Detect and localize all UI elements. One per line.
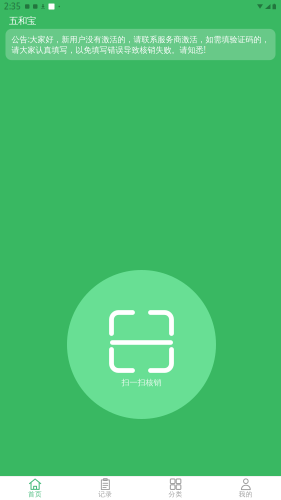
staticText: 五和宝 [9, 15, 36, 27]
staticText: 公告:大家好，新用户没有激活的，请联系服务商激活，如需填验证码的，请大家认真填写… [11, 34, 269, 55]
staticText: 扫一扫核销 [121, 378, 161, 387]
staticText: 分类 [169, 490, 183, 498]
button[interactable]: 扫一扫核销 [67, 270, 216, 419]
staticText: 2:35 [4, 1, 21, 12]
button[interactable]: 我的 [211, 476, 281, 500]
staticText: 我的 [239, 490, 253, 498]
staticText: 首页 [28, 490, 42, 498]
button[interactable]: 首页 [0, 476, 70, 500]
button[interactable]: 分类 [140, 476, 211, 500]
button[interactable]: 记录 [70, 476, 140, 500]
staticText: 记录 [98, 490, 112, 498]
